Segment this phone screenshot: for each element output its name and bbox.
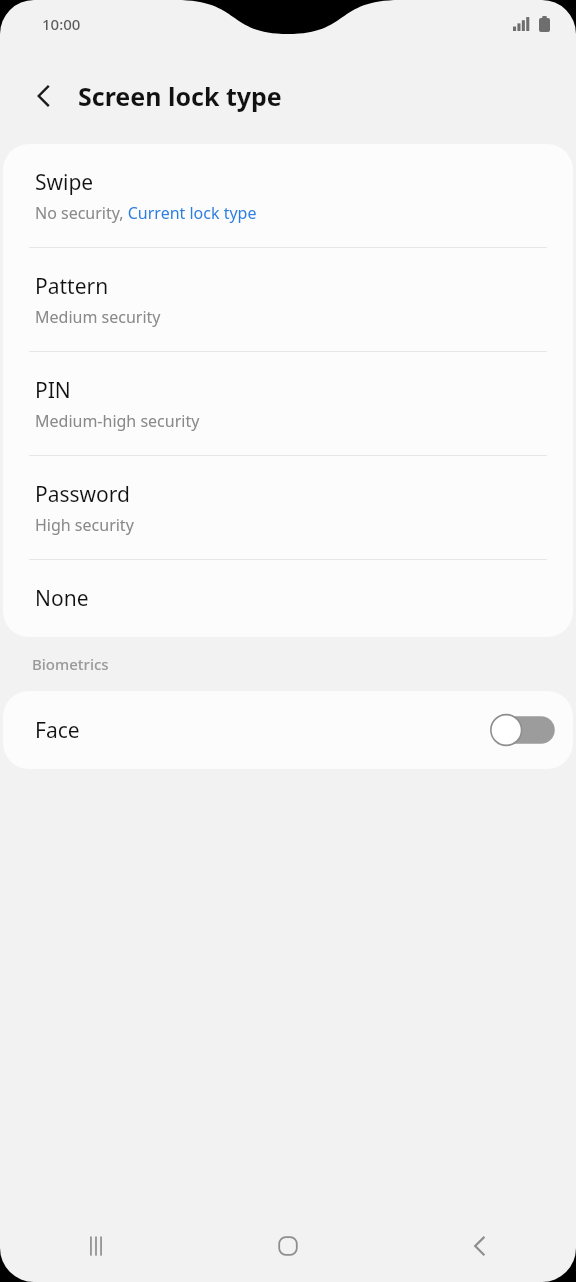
staticText: Biometrics (32, 654, 109, 674)
staticText: None (35, 584, 89, 613)
staticText: Screen lock type (78, 79, 282, 113)
button[interactable]: Back (16, 68, 72, 124)
button[interactable]: Home (192, 1210, 384, 1282)
staticText: PIN (35, 376, 71, 405)
button[interactable]: Back (384, 1210, 576, 1282)
staticText: Face (35, 716, 80, 745)
staticText: Medium security (35, 306, 161, 328)
staticText: Medium-high security (35, 410, 200, 432)
staticText: 10:00 (42, 14, 81, 34)
staticText: High security (35, 514, 134, 536)
staticText: Password (35, 480, 130, 509)
button[interactable]: Recent apps (0, 1210, 192, 1282)
staticText: No security, Current lock type (35, 202, 257, 224)
staticText: Swipe (35, 168, 94, 197)
button[interactable]: Pattern (3, 248, 573, 351)
button[interactable]: Face (3, 691, 573, 769)
button[interactable]: None (3, 560, 573, 637)
staticText: Pattern (35, 272, 109, 301)
button[interactable]: PIN (3, 352, 573, 455)
button[interactable]: Password (3, 456, 573, 559)
button[interactable]: Swipe (3, 144, 573, 247)
